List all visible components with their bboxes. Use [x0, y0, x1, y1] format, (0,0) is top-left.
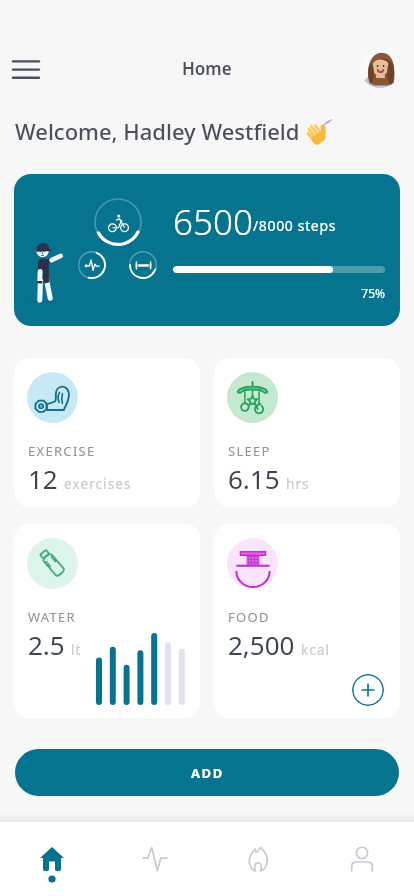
staticText: hrs [286, 475, 310, 493]
button[interactable]: 6500 [14, 174, 400, 326]
button[interactable]: Profile [310, 822, 414, 896]
button[interactable]: FOOD [214, 524, 400, 718]
button[interactable]: Calories [206, 822, 310, 896]
button[interactable]: WATER [14, 524, 200, 718]
button[interactable]: ADD [15, 749, 399, 796]
staticText: /8000 steps [253, 216, 337, 235]
button[interactable]: Activity [103, 822, 206, 896]
staticText: 6500 [173, 198, 253, 246]
staticText: 75% [173, 285, 385, 301]
button[interactable]: Home [0, 822, 103, 896]
staticText: 2,500 [228, 627, 295, 662]
staticText: FOOD [228, 608, 270, 626]
staticText: exercises [64, 475, 132, 493]
staticText: kcal [301, 641, 331, 659]
staticText: 12 [28, 461, 58, 496]
button[interactable]: EXERCISE [14, 358, 200, 507]
staticText: Welcome, Hadley Westfield [15, 116, 300, 146]
staticText: 6.15 [228, 461, 280, 496]
staticText: WATER [28, 608, 77, 626]
button[interactable]: Profile [360, 48, 400, 88]
staticText: SLEEP [228, 442, 271, 460]
staticText: ADD [191, 764, 224, 782]
button[interactable]: Menu [6, 49, 46, 89]
staticText: Home [182, 57, 232, 80]
staticText: 2.5 [28, 627, 65, 662]
staticText: EXERCISE [28, 442, 96, 460]
button[interactable]: SLEEP [214, 358, 400, 507]
button[interactable]: Add food [352, 674, 384, 706]
staticText: lt [71, 641, 82, 659]
